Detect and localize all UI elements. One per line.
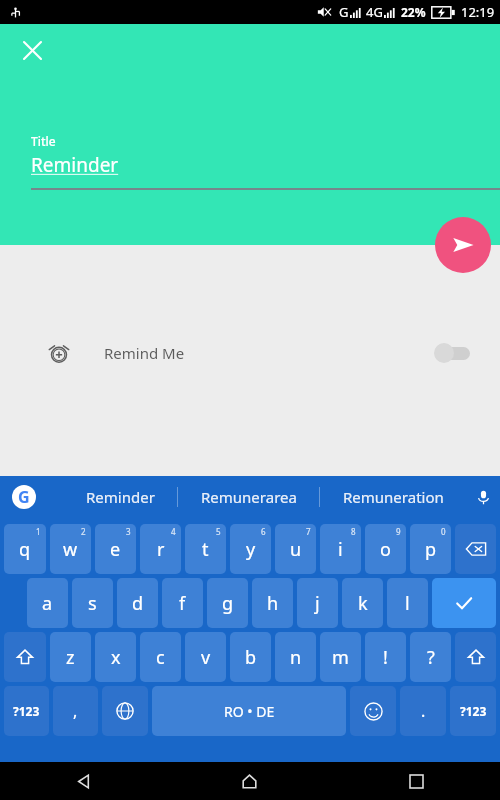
- button[interactable]: w: [50, 524, 91, 574]
- button[interactable]: Change language: [102, 686, 148, 736]
- button[interactable]: ?: [410, 632, 451, 682]
- button[interactable]: Google: [12, 485, 36, 509]
- staticText: o: [380, 537, 391, 562]
- staticText: 8: [351, 526, 356, 537]
- staticText: Reminder: [86, 487, 155, 507]
- button[interactable]: .: [400, 686, 446, 736]
- staticText: 9: [396, 526, 401, 537]
- button[interactable]: Voice input: [466, 476, 500, 518]
- staticText: n: [290, 645, 302, 670]
- button[interactable]: s: [72, 578, 113, 628]
- staticText: ?: [427, 645, 435, 670]
- staticText: k: [358, 591, 368, 616]
- button[interactable]: Home: [166, 762, 333, 800]
- staticText: .: [421, 700, 426, 722]
- staticText: u: [290, 537, 302, 562]
- staticText: Remunerarea: [201, 487, 297, 507]
- button[interactable]: Shift: [455, 632, 496, 682]
- button[interactable]: b: [230, 632, 271, 682]
- button[interactable]: Enter: [432, 578, 496, 628]
- staticText: 5: [216, 526, 221, 537]
- staticText: q: [19, 537, 31, 562]
- staticText: x: [111, 645, 121, 670]
- button[interactable]: Remuneration: [320, 476, 466, 518]
- staticText: h: [267, 591, 279, 616]
- button[interactable]: g: [207, 578, 248, 628]
- button[interactable]: x: [95, 632, 136, 682]
- button[interactable]: RO • DE: [152, 686, 346, 736]
- staticText: !: [383, 645, 388, 670]
- button[interactable]: m: [320, 632, 361, 682]
- button[interactable]: Remind Me: [0, 327, 500, 379]
- button[interactable]: q: [4, 524, 46, 574]
- staticText: w: [63, 537, 78, 562]
- button[interactable]: o: [365, 524, 406, 574]
- button[interactable]: Reminder: [64, 476, 177, 518]
- staticText: 3: [126, 526, 131, 537]
- button[interactable]: Send: [435, 217, 491, 273]
- button[interactable]: Close: [15, 33, 49, 67]
- button[interactable]: d: [117, 578, 158, 628]
- staticText: 2: [81, 526, 86, 537]
- staticText: 4G: [366, 3, 383, 21]
- staticText: d: [132, 591, 144, 616]
- staticText: Remind Me: [104, 343, 185, 363]
- button[interactable]: Recent apps: [333, 762, 500, 800]
- staticText: c: [156, 645, 165, 670]
- staticText: g: [222, 591, 234, 616]
- button[interactable]: r: [140, 524, 181, 574]
- button[interactable]: ?123: [4, 686, 49, 736]
- button[interactable]: i: [320, 524, 361, 574]
- staticText: Remuneration: [343, 487, 444, 507]
- staticText: 22%: [401, 4, 426, 20]
- staticText: ?123: [460, 703, 487, 719]
- staticText: f: [179, 591, 186, 616]
- staticText: i: [338, 537, 343, 562]
- button[interactable]: Back: [0, 762, 166, 800]
- button[interactable]: y: [230, 524, 271, 574]
- button[interactable]: Emoji: [350, 686, 396, 736]
- button[interactable]: Title: [31, 133, 500, 190]
- button[interactable]: u: [275, 524, 316, 574]
- button[interactable]: !: [365, 632, 406, 682]
- staticText: 6: [261, 526, 266, 537]
- button[interactable]: a: [27, 578, 68, 628]
- staticText: t: [202, 537, 209, 562]
- staticText: a: [42, 591, 53, 616]
- button[interactable]: Remunerarea: [178, 476, 319, 518]
- staticText: b: [245, 645, 257, 670]
- staticText: s: [88, 591, 97, 616]
- staticText: G: [18, 486, 30, 508]
- staticText: 1: [36, 526, 41, 537]
- staticText: m: [332, 645, 349, 670]
- staticText: j: [315, 591, 320, 616]
- staticText: l: [405, 591, 410, 616]
- staticText: r: [157, 537, 165, 562]
- button[interactable]: e: [95, 524, 136, 574]
- button[interactable]: j: [297, 578, 338, 628]
- staticText: Title: [31, 133, 56, 149]
- button[interactable]: t: [185, 524, 226, 574]
- button[interactable]: c: [140, 632, 181, 682]
- button[interactable]: n: [275, 632, 316, 682]
- button[interactable]: z: [50, 632, 91, 682]
- staticText: 0: [441, 526, 446, 537]
- button[interactable]: ,: [53, 686, 98, 736]
- staticText: Reminder: [31, 152, 119, 178]
- button[interactable]: f: [162, 578, 203, 628]
- staticText: ?123: [13, 703, 40, 719]
- staticText: RO • DE: [224, 702, 275, 721]
- staticText: z: [66, 645, 75, 670]
- staticText: v: [201, 645, 211, 670]
- button[interactable]: h: [252, 578, 293, 628]
- staticText: p: [425, 537, 437, 562]
- button[interactable]: l: [387, 578, 428, 628]
- button[interactable]: Shift: [4, 632, 46, 682]
- button[interactable]: v: [185, 632, 226, 682]
- button[interactable]: p: [410, 524, 451, 574]
- staticText: G: [339, 3, 349, 21]
- button[interactable]: k: [342, 578, 383, 628]
- staticText: e: [110, 537, 121, 562]
- button[interactable]: Backspace: [455, 524, 496, 574]
- button[interactable]: ?123: [450, 686, 496, 736]
